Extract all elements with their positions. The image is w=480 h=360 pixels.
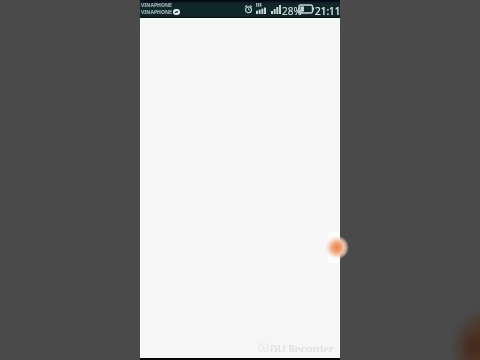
staticText: VINAPHONE [141,2,172,9]
staticText: VINAPHONE [141,9,172,16]
staticText: DU Recorder [270,342,334,352]
staticText: 28% [282,4,302,18]
button[interactable]: Recorder [328,232,340,263]
staticText: 21:11 [315,4,341,18]
